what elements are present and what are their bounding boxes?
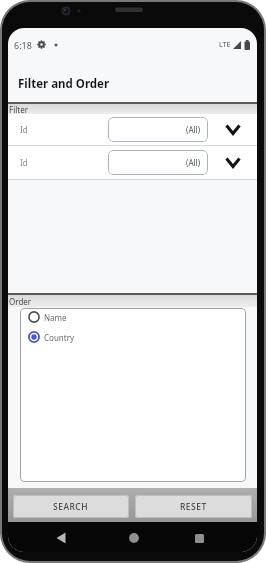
staticText: Filter and Order bbox=[18, 76, 110, 92]
button[interactable] bbox=[55, 532, 67, 544]
staticText: Id bbox=[20, 124, 28, 135]
staticText: (All) bbox=[186, 124, 201, 135]
staticText: Filter bbox=[9, 104, 28, 114]
staticText: Order bbox=[9, 296, 32, 307]
button[interactable]: (All) bbox=[108, 117, 208, 142]
button[interactable] bbox=[195, 534, 204, 543]
staticText: Country bbox=[44, 332, 75, 343]
button[interactable]: RESET bbox=[135, 495, 252, 518]
button[interactable]: SEARCH bbox=[13, 495, 129, 518]
button[interactable] bbox=[208, 146, 257, 179]
staticText: 6:18 bbox=[14, 39, 32, 51]
staticText: Name bbox=[44, 312, 67, 323]
button[interactable] bbox=[208, 114, 257, 145]
button[interactable] bbox=[129, 533, 139, 543]
staticText: SEARCH bbox=[53, 501, 89, 513]
button[interactable]: (All) bbox=[108, 150, 208, 175]
staticText: (All) bbox=[186, 157, 201, 168]
staticText: LTE bbox=[219, 40, 231, 50]
staticText: RESET bbox=[180, 501, 207, 513]
button[interactable]: Country bbox=[28, 326, 246, 348]
staticText: Id bbox=[20, 157, 28, 168]
button[interactable]: Name bbox=[28, 308, 246, 326]
